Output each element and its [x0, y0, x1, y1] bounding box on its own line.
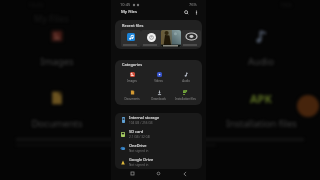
staticText: Not signed in — [129, 163, 149, 167]
staticText: SD card — [129, 129, 144, 134]
button[interactable] — [161, 30, 181, 47]
button[interactable]: Videos — [145, 71, 172, 83]
staticText: My Files — [121, 9, 138, 15]
button[interactable]: More options — [191, 7, 201, 17]
staticText: Installation files — [175, 97, 196, 101]
button[interactable]: Documents — [119, 89, 145, 101]
button[interactable]: Home — [154, 169, 163, 178]
staticText: APK — [183, 90, 189, 95]
staticText: Not signed in — [129, 149, 149, 153]
button[interactable]: Downloads — [145, 89, 172, 101]
button[interactable]: APK — [172, 89, 199, 101]
staticText: Documents — [124, 97, 140, 101]
staticText: Documents — [31, 117, 83, 130]
button[interactable]: OneDrive — [121, 141, 198, 155]
staticText: 76% — [189, 2, 197, 7]
button[interactable] — [181, 30, 201, 47]
staticText: APK — [250, 91, 272, 106]
button[interactable]: Internal storage — [121, 113, 198, 127]
staticText: Recent files — [122, 23, 144, 28]
button[interactable]: Audio — [172, 71, 199, 83]
staticText: 10:45 — [120, 2, 131, 7]
staticText: Images — [127, 79, 137, 83]
button[interactable]: Recent apps — [128, 169, 137, 178]
staticText: Downloads — [151, 97, 166, 101]
staticText: Videos — [154, 79, 163, 83]
staticText: Categories — [122, 62, 143, 67]
button[interactable]: Back — [180, 169, 189, 178]
staticText: OneDrive — [129, 143, 147, 148]
staticText: Audio — [248, 55, 274, 68]
button[interactable]: SD card — [121, 127, 198, 141]
button[interactable] — [141, 30, 161, 47]
button[interactable]: Images — [119, 71, 145, 83]
button[interactable]: Google Drive — [121, 155, 198, 169]
staticText: Audio — [182, 79, 190, 83]
staticText: Installation files — [226, 117, 297, 130]
staticText: 104 GB / 256 GB — [129, 121, 153, 125]
button[interactable] — [121, 30, 141, 47]
staticText: Internal storage — [129, 115, 160, 120]
staticText: Google Drive — [129, 157, 154, 162]
staticText: Images — [40, 55, 74, 68]
button[interactable]: Search — [181, 7, 191, 17]
staticText: 2.1 GB / 32 GB — [129, 135, 150, 139]
